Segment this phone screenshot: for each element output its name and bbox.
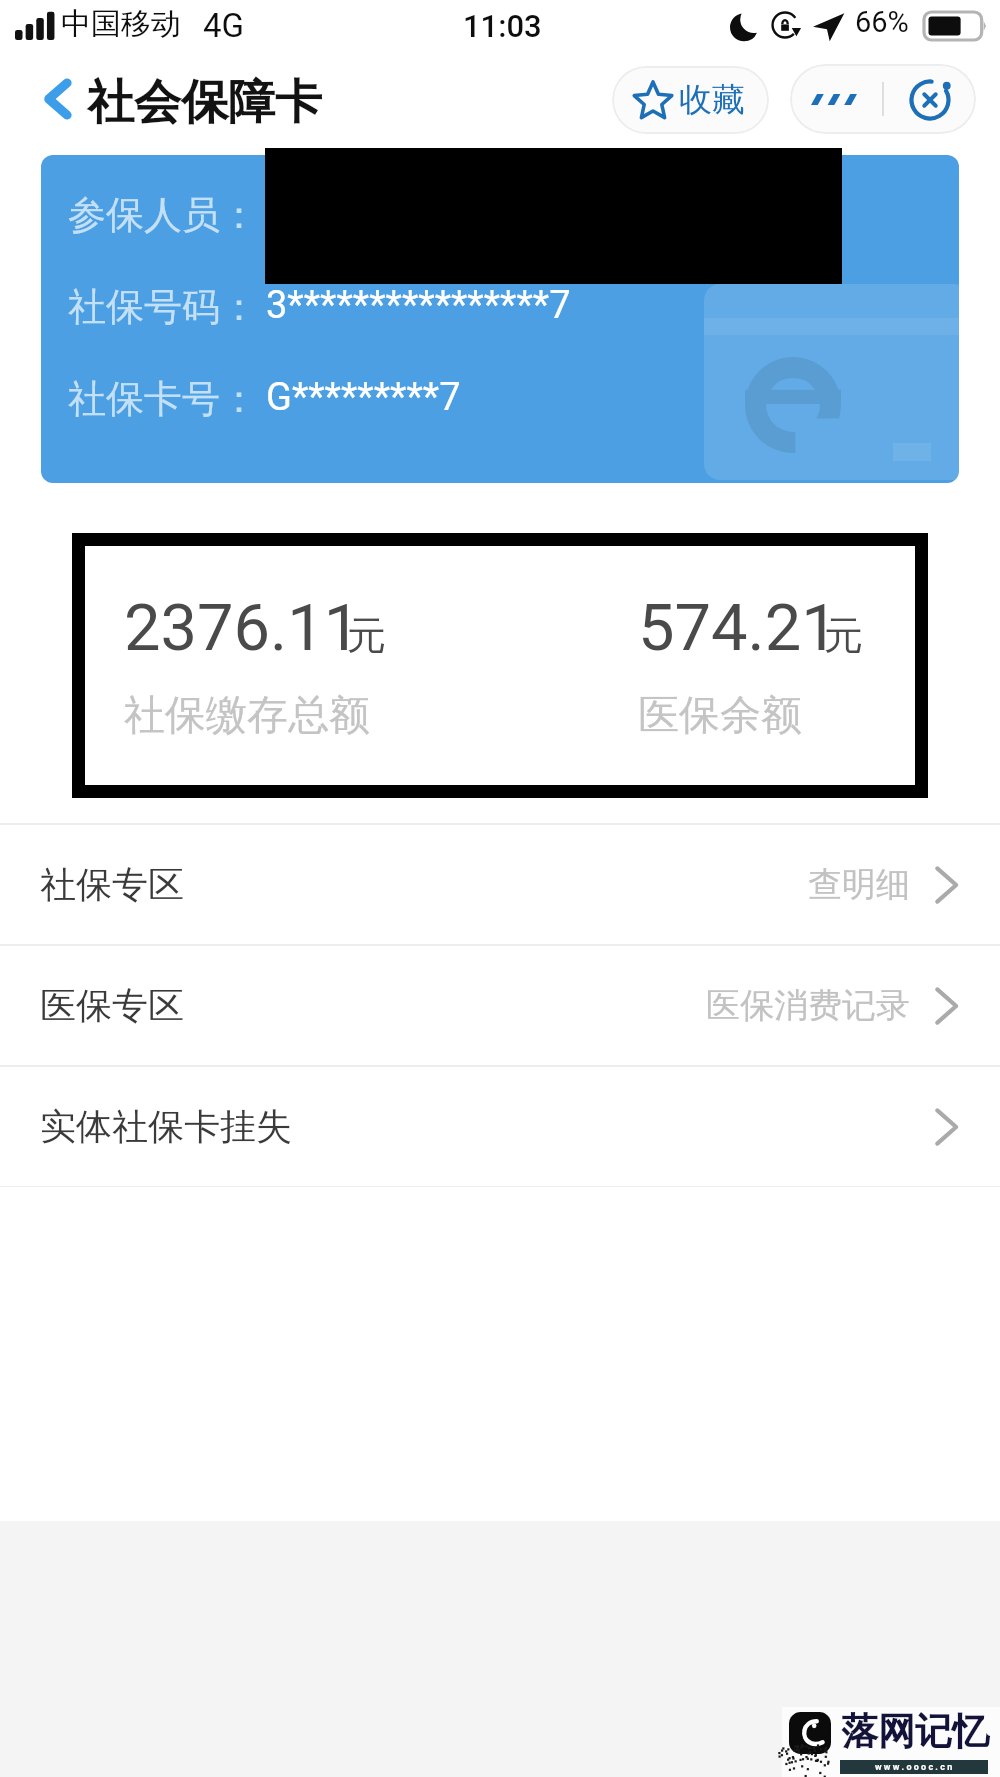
- staticText: 社保缴存总额: [124, 690, 370, 742]
- staticText: 3****************7: [266, 283, 571, 328]
- staticText: 中国移动: [61, 5, 181, 43]
- staticText: 查明细: [808, 863, 910, 906]
- button[interactable]: 医保专区: [0, 946, 1000, 1065]
- button[interactable]: More options: [790, 64, 882, 134]
- staticText: 落网记忆: [841, 1708, 989, 1755]
- staticText: 574.21: [638, 590, 838, 666]
- staticText: 66%: [855, 5, 909, 39]
- staticText: 社保专区: [40, 862, 184, 907]
- staticText: 社保卡号：: [68, 375, 258, 423]
- staticText: 社会保障卡: [87, 73, 322, 132]
- button[interactable]: 实体社保卡挂失: [0, 1067, 1000, 1186]
- staticText: 元: [824, 611, 863, 660]
- button[interactable]: 社保专区: [0, 825, 1000, 944]
- staticText: 11:03: [463, 8, 542, 44]
- staticText: 医保专区: [40, 983, 184, 1028]
- button[interactable]: Close: [884, 64, 976, 134]
- staticText: 医保消费记录: [706, 984, 910, 1027]
- button[interactable]: 收藏: [612, 66, 769, 134]
- button[interactable]: Back: [34, 76, 80, 122]
- staticText: 实体社保卡挂失: [40, 1104, 292, 1149]
- staticText: 4G: [203, 6, 245, 45]
- staticText: G*********7: [266, 375, 461, 420]
- staticText: 2376.11: [124, 590, 361, 666]
- staticText: w w w . o o o c . c n: [875, 1762, 953, 1773]
- staticText: 元: [347, 611, 386, 660]
- staticText: 社保号码：: [68, 283, 258, 331]
- staticText: 参保人员：: [68, 191, 258, 239]
- staticText: 医保余额: [638, 690, 802, 742]
- staticText: 收藏: [679, 79, 745, 121]
